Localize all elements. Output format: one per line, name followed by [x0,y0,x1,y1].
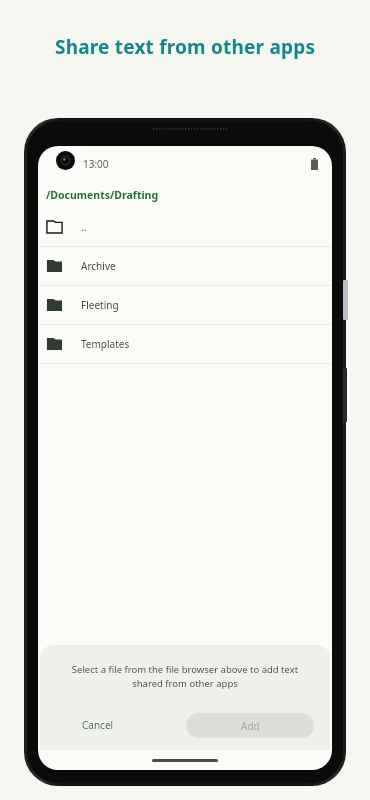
staticText: Select a file from the file browser abov… [62,663,308,690]
staticText: Templates [81,337,130,351]
staticText: Fleeting [81,298,119,312]
staticText: Cancel [82,718,114,732]
staticText: Add [241,719,260,733]
button[interactable]: .. [38,208,332,246]
button[interactable]: Templates [38,325,332,363]
staticText: Share text from other apps [55,34,316,60]
staticText: .. [81,220,87,234]
button[interactable]: Archive [38,247,332,285]
staticText: Archive [81,259,116,273]
staticText: 13:00 [83,157,109,171]
button[interactable]: /Documents/Drafting [38,182,332,208]
button[interactable]: Fleeting [38,286,332,324]
button[interactable]: Cancel [56,710,140,740]
button[interactable]: Add [186,713,314,738]
staticText: /Documents/Drafting [46,188,159,202]
